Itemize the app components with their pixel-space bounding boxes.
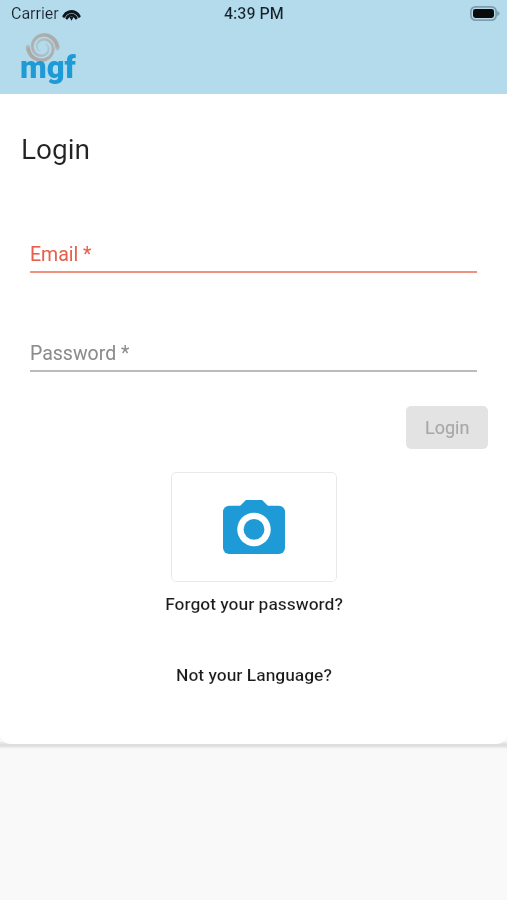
button[interactable]: Login [406, 406, 488, 449]
button[interactable]: Take photo [171, 472, 337, 582]
staticText: Not your Language? [176, 665, 332, 685]
staticText: Carrier [11, 4, 59, 23]
staticText: Login [425, 417, 470, 438]
staticText: Password * [30, 342, 130, 365]
button[interactable]: Not your Language? [0, 665, 507, 685]
staticText: Forgot your password? [165, 594, 343, 614]
staticText: Login [21, 133, 91, 166]
button[interactable]: Forgot your password? [0, 594, 507, 614]
staticText: mgf [20, 49, 76, 85]
staticText: 4:39 PM [224, 4, 284, 23]
staticText: Email * [30, 243, 92, 266]
